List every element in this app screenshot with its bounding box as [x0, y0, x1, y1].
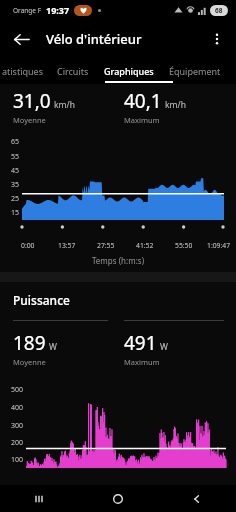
staticText: 45: [11, 166, 20, 176]
staticText: 68: [215, 6, 223, 15]
staticText: km/h: [54, 99, 75, 111]
staticText: W: [160, 341, 168, 353]
button[interactable]: atistiques: [2, 58, 43, 84]
button[interactable]: Back: [5, 23, 37, 55]
staticText: 19:37: [46, 4, 70, 16]
staticText: Orange F: [13, 6, 42, 15]
staticText: W: [49, 341, 57, 353]
staticText: 15: [11, 208, 20, 218]
staticText: 27:55: [97, 241, 115, 250]
staticText: 41:52: [136, 241, 154, 250]
button[interactable]: Équipement: [169, 58, 221, 84]
staticText: Circuits: [57, 65, 89, 77]
button[interactable]: Circuits: [57, 58, 89, 84]
staticText: 31,0: [13, 88, 51, 114]
staticText: 300: [11, 421, 24, 431]
staticText: km/h: [165, 99, 186, 111]
staticText: 40,1: [124, 88, 162, 114]
staticText: 25: [11, 194, 20, 204]
button[interactable]: Recent apps: [0, 485, 78, 512]
staticText: Maximum: [124, 115, 160, 125]
button[interactable]: Graphiques: [104, 58, 154, 84]
staticText: 100: [11, 455, 24, 465]
staticText: 491: [124, 330, 157, 356]
staticText: 55:50: [175, 241, 193, 250]
button[interactable]: More options: [201, 23, 233, 55]
staticText: 65: [11, 137, 20, 147]
staticText: Équipement: [169, 65, 221, 77]
staticText: 189: [13, 330, 46, 356]
staticText: Vélo d'intérieur: [46, 30, 142, 48]
staticText: Temps (h:m:s): [0, 255, 236, 266]
staticText: 400: [11, 403, 24, 413]
staticText: Maximum: [124, 357, 160, 367]
button[interactable]: Home: [78, 485, 157, 512]
staticText: atistiques: [2, 65, 43, 77]
staticText: 0:00: [21, 241, 35, 250]
staticText: 1:09:47: [207, 241, 231, 250]
staticText: 200: [11, 438, 24, 448]
staticText: Moyenne: [13, 357, 46, 367]
staticText: 55: [11, 152, 20, 162]
staticText: Puissance: [13, 292, 70, 308]
staticText: Graphiques: [104, 65, 154, 77]
button[interactable]: Back: [157, 485, 236, 512]
staticText: 500: [11, 385, 24, 395]
staticText: 13:57: [58, 241, 76, 250]
staticText: 35: [11, 180, 20, 190]
staticText: Moyenne: [13, 115, 46, 125]
